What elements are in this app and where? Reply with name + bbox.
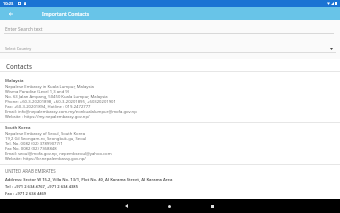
staticText: South Korea Nepalese Embassy of Seoul, S… bbox=[5, 125, 112, 161]
staticText: Malaysia Nepalese Embassy in Kuala Lumpu… bbox=[5, 78, 137, 119]
staticText: Select Country bbox=[5, 46, 32, 51]
button[interactable]: Back bbox=[119, 199, 133, 213]
button[interactable]: Home bbox=[162, 199, 176, 213]
button[interactable]: Select Country bbox=[0, 34, 340, 53]
staticText: UNITED ARAB EMIRATES bbox=[5, 168, 56, 174]
button[interactable]: Back bbox=[6, 9, 16, 19]
staticText: 10:23 bbox=[3, 1, 14, 6]
staticText: Enter Search text bbox=[5, 26, 43, 32]
staticText: Important Contacts bbox=[42, 10, 90, 17]
staticText: Contacts bbox=[6, 62, 32, 70]
staticText: Address: Sector W 15-2, Villa No. 13/1, … bbox=[5, 177, 173, 199]
button[interactable]: Recent apps bbox=[205, 199, 219, 213]
